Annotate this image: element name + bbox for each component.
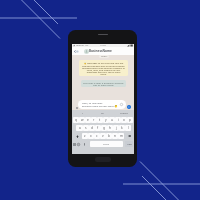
button[interactable]: Backspace	[125, 133, 133, 139]
staticText: I	[82, 112, 83, 115]
staticText: ok	[101, 112, 104, 115]
button[interactable]: Back	[73, 47, 79, 55]
staticText: This chat is with a business account. Ta…	[82, 81, 125, 87]
staticText: p	[129, 118, 131, 122]
staticText: e	[87, 118, 89, 122]
button[interactable]: 🔒 Messages to this chat and calls are no…	[79, 60, 128, 76]
staticText: BusinessName	[89, 49, 112, 53]
staticText: Telenor NO	[76, 44, 89, 47]
button[interactable]: Thanks	[113, 110, 134, 117]
staticText: g	[103, 126, 105, 130]
button[interactable]: m	[118, 133, 124, 139]
button[interactable]: Contact photo	[84, 49, 89, 54]
button[interactable]: y	[103, 117, 109, 123]
button[interactable]: j	[113, 125, 119, 131]
button[interactable]: Okay, so how does BusinessName actually …	[78, 100, 126, 109]
button[interactable]: This chat is with a business account. Ta…	[81, 80, 126, 87]
staticText: 13:22	[100, 44, 106, 47]
staticText: x	[90, 134, 92, 138]
button[interactable]: b	[106, 133, 112, 139]
button[interactable]: g	[101, 125, 107, 131]
button[interactable]: Symbols	[72, 141, 76, 147]
staticText: q	[75, 118, 77, 122]
button[interactable]: s	[83, 125, 89, 131]
button[interactable]: Send	[127, 105, 131, 109]
button[interactable]: k	[119, 125, 125, 131]
staticText: k	[121, 126, 123, 130]
button[interactable]: o	[121, 117, 127, 123]
button[interactable]: h	[107, 125, 113, 131]
staticText: Next	[127, 143, 132, 146]
staticText: o	[123, 118, 125, 122]
staticText: 🔒 Messages to this chat and calls are no…	[82, 62, 125, 75]
staticText: n	[114, 134, 116, 138]
button[interactable]: q	[73, 117, 79, 123]
button[interactable]: a	[76, 125, 83, 131]
staticText: h	[109, 126, 111, 130]
staticText: d	[91, 126, 93, 130]
button[interactable]: Shift	[73, 133, 82, 139]
button[interactable]: d	[89, 125, 95, 131]
staticText: w	[81, 118, 84, 122]
staticText: t	[99, 118, 101, 122]
staticText: z	[84, 134, 86, 138]
staticText: TODAY	[101, 55, 108, 58]
button[interactable]: i	[115, 117, 121, 123]
staticText: Space	[103, 143, 110, 146]
button[interactable]: l	[125, 125, 131, 131]
staticText: y	[105, 118, 107, 122]
button[interactable]: n	[112, 133, 118, 139]
staticText: r	[93, 118, 95, 122]
staticText: s	[85, 126, 87, 130]
button[interactable]: w	[79, 117, 85, 123]
staticText: Thanks	[120, 112, 128, 115]
button[interactable]: ok	[92, 110, 113, 117]
staticText: Okay, so how does BusinessName actually …	[82, 101, 118, 107]
button[interactable]: c	[94, 133, 100, 139]
staticText: c	[96, 134, 98, 138]
staticText: j	[116, 126, 117, 130]
staticText: m	[120, 134, 123, 138]
button[interactable]: t	[97, 117, 103, 123]
button[interactable]: Attach	[74, 104, 79, 111]
button[interactable]: f	[95, 125, 101, 131]
button[interactable]: z	[82, 133, 88, 139]
button[interactable]: Emoji	[76, 141, 80, 147]
staticText: u	[111, 118, 113, 122]
button[interactable]: Space	[90, 141, 123, 147]
staticText: b	[108, 134, 110, 138]
button[interactable]: r	[91, 117, 97, 123]
button[interactable]: v	[100, 133, 106, 139]
staticText: v	[102, 134, 104, 138]
button[interactable]: Voice input	[82, 141, 87, 147]
staticText: l	[128, 126, 129, 130]
button[interactable]: e	[85, 117, 91, 123]
button[interactable]: u	[109, 117, 115, 123]
button[interactable]: Next	[125, 141, 133, 147]
staticText: a	[79, 126, 81, 130]
button[interactable]: x	[88, 133, 94, 139]
staticText: f	[97, 126, 99, 130]
staticText: i	[118, 118, 119, 122]
button[interactable]: p	[127, 117, 133, 123]
button[interactable]: TODAY	[99, 55, 109, 58]
